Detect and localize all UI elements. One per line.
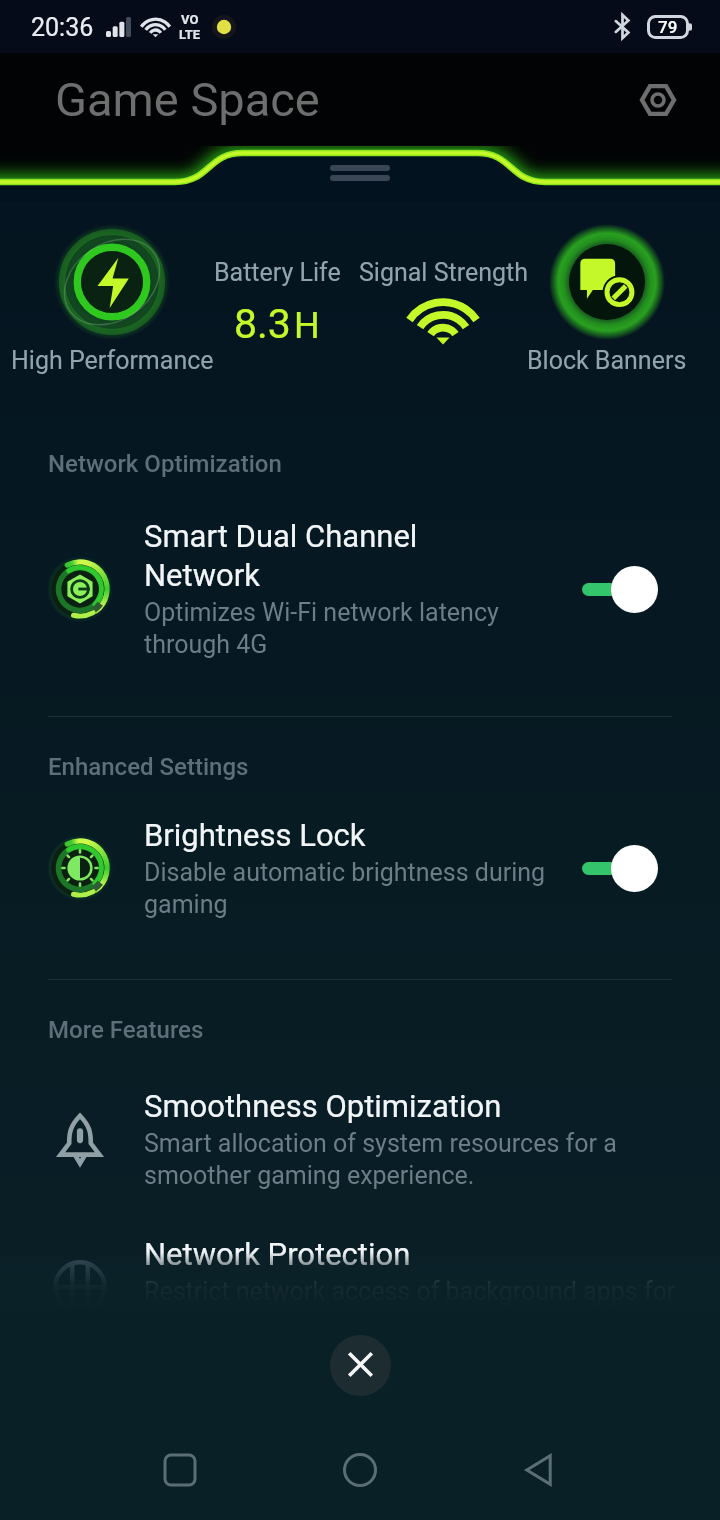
staticText: Smart Dual Channel Network [144, 518, 418, 593]
staticText: Disable automatic brightness during gami… [144, 858, 546, 919]
staticText: 79 [658, 17, 678, 37]
button[interactable]: Settings [634, 76, 682, 124]
staticText: 8.3 [234, 300, 291, 348]
button[interactable]: Home [325, 1435, 395, 1505]
button[interactable]: Smart Dual Channel Network [0, 518, 720, 659]
button[interactable]: Brightness Lock [0, 817, 720, 919]
staticText: Block Banners [527, 346, 687, 375]
button[interactable]: Smoothness Optimization [0, 1088, 720, 1190]
button[interactable]: High Performance [16, 222, 208, 402]
staticText: Smart allocation of system resources for… [144, 1129, 617, 1190]
staticText: VO [181, 12, 199, 27]
staticText: Enhanced Settings [48, 753, 249, 781]
button[interactable]: Recents [145, 1435, 215, 1505]
button[interactable]: Toggle [581, 843, 659, 893]
staticText: Optimizes Wi-Fi network latency through … [144, 598, 499, 659]
staticText: 20:36 [31, 13, 94, 42]
staticText: H [294, 305, 320, 347]
staticText: High Performance [11, 346, 214, 375]
staticText: Game Space [55, 72, 320, 127]
button[interactable]: Back [505, 1435, 575, 1505]
staticText: Network Protection [144, 1236, 411, 1272]
button[interactable]: Toggle [581, 564, 659, 614]
staticText: Battery Life [214, 258, 341, 287]
staticText: More Features [48, 1016, 204, 1044]
staticText: LTE [179, 27, 201, 42]
button[interactable]: Network Protection [0, 1236, 720, 1338]
button[interactable]: Close [330, 1335, 391, 1396]
staticText: Network Optimization [48, 450, 282, 478]
staticText: Smoothness Optimization [144, 1088, 502, 1124]
button[interactable]: Block Banners [511, 222, 703, 402]
staticText: Brightness Lock [144, 817, 366, 853]
staticText: Signal Strength [359, 258, 528, 287]
